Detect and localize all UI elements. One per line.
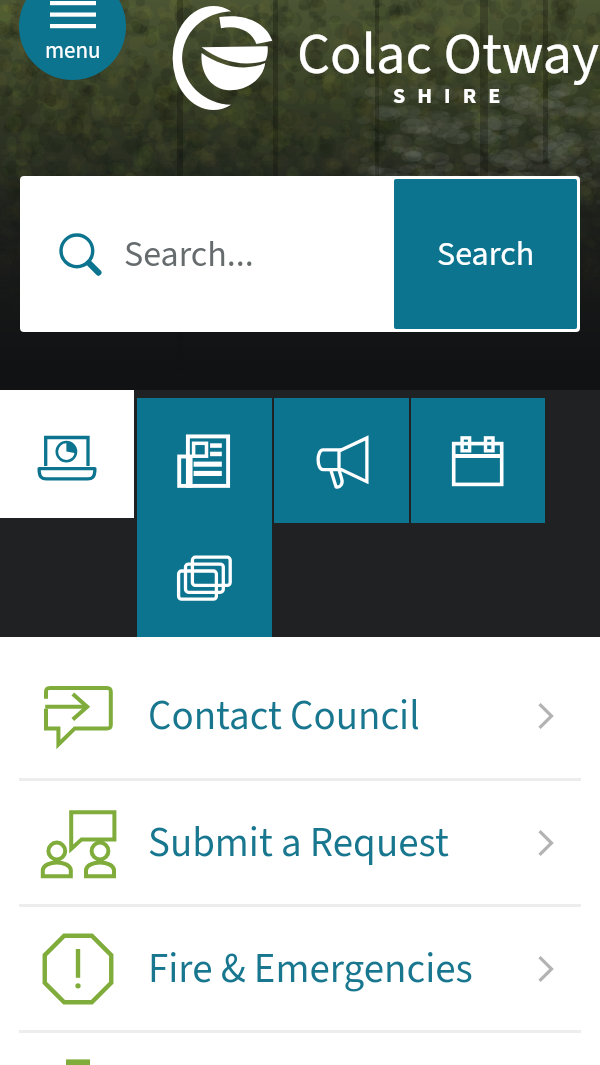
staticText: Submit a Request (148, 814, 449, 872)
staticText: Fire & Emergencies (148, 940, 473, 998)
staticText: menu (45, 34, 101, 67)
staticText: Search... (124, 229, 254, 280)
button[interactable]: Fire & Emergencies (0, 907, 600, 1030)
staticText: Search (437, 230, 535, 278)
button[interactable]: Announcements (274, 398, 409, 523)
staticText: SHIRE (393, 80, 513, 111)
staticText: Colac Otway (297, 14, 600, 97)
button[interactable]: Contact Council (0, 654, 600, 778)
button[interactable]: menu (19, 0, 126, 80)
button[interactable]: Submit a Request (0, 781, 600, 904)
button[interactable]: Online services (0, 390, 134, 518)
button[interactable]: Waste & Recycling (0, 1033, 600, 1065)
button[interactable]: News (137, 398, 272, 523)
button[interactable]: Photo gallery (137, 523, 272, 637)
button[interactable]: Search... (23, 179, 394, 329)
button[interactable]: Search (394, 179, 577, 329)
staticText: Contact Council (148, 687, 420, 745)
button[interactable]: Events (411, 398, 545, 523)
